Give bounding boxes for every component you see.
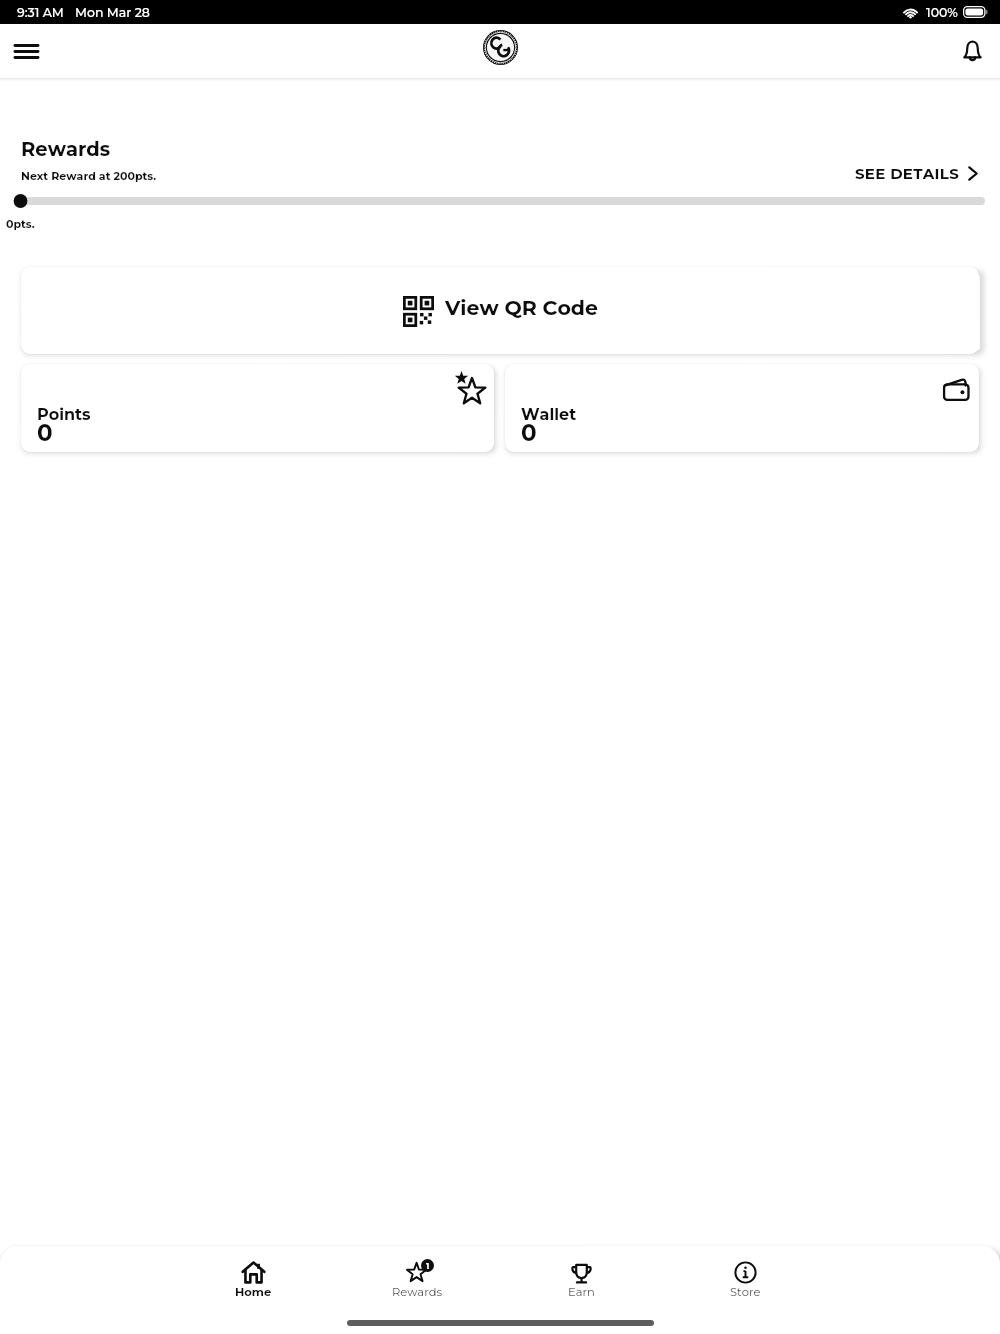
button[interactable]: Points <box>21 364 494 452</box>
staticText: 0 <box>521 419 537 447</box>
button[interactable]: View QR Code <box>21 267 979 354</box>
button[interactable]: SEE DETAILS <box>855 164 978 182</box>
staticText: Store <box>730 1285 761 1299</box>
button[interactable]: Wallet <box>505 364 979 452</box>
staticText: 0pts. <box>6 217 35 230</box>
staticText: Points <box>37 405 91 425</box>
staticText: Earn <box>568 1285 595 1299</box>
staticText: SEE DETAILS <box>855 164 960 182</box>
button[interactable]: Earn <box>499 1246 663 1299</box>
button[interactable]: Common Grounds logo <box>483 30 518 65</box>
staticText: 1 <box>426 1261 430 1271</box>
staticText: Rewards <box>21 137 111 161</box>
staticText: View QR Code <box>445 295 598 320</box>
button[interactable]: Store <box>663 1246 827 1299</box>
button[interactable]: 1 <box>335 1246 499 1299</box>
staticText: Next Reward at 200pts. <box>21 169 157 182</box>
staticText: Home <box>235 1285 272 1299</box>
staticText: Rewards <box>392 1285 443 1299</box>
staticText: 100% <box>926 5 958 20</box>
button[interactable]: Notifications <box>952 30 992 70</box>
staticText: 9:31 AM <box>17 5 64 20</box>
button[interactable]: Menu <box>6 31 46 71</box>
staticText: Mon Mar 28 <box>75 5 150 20</box>
staticText: Wallet <box>521 405 577 425</box>
button[interactable]: Home <box>171 1246 335 1299</box>
staticText: 0 <box>37 419 53 447</box>
